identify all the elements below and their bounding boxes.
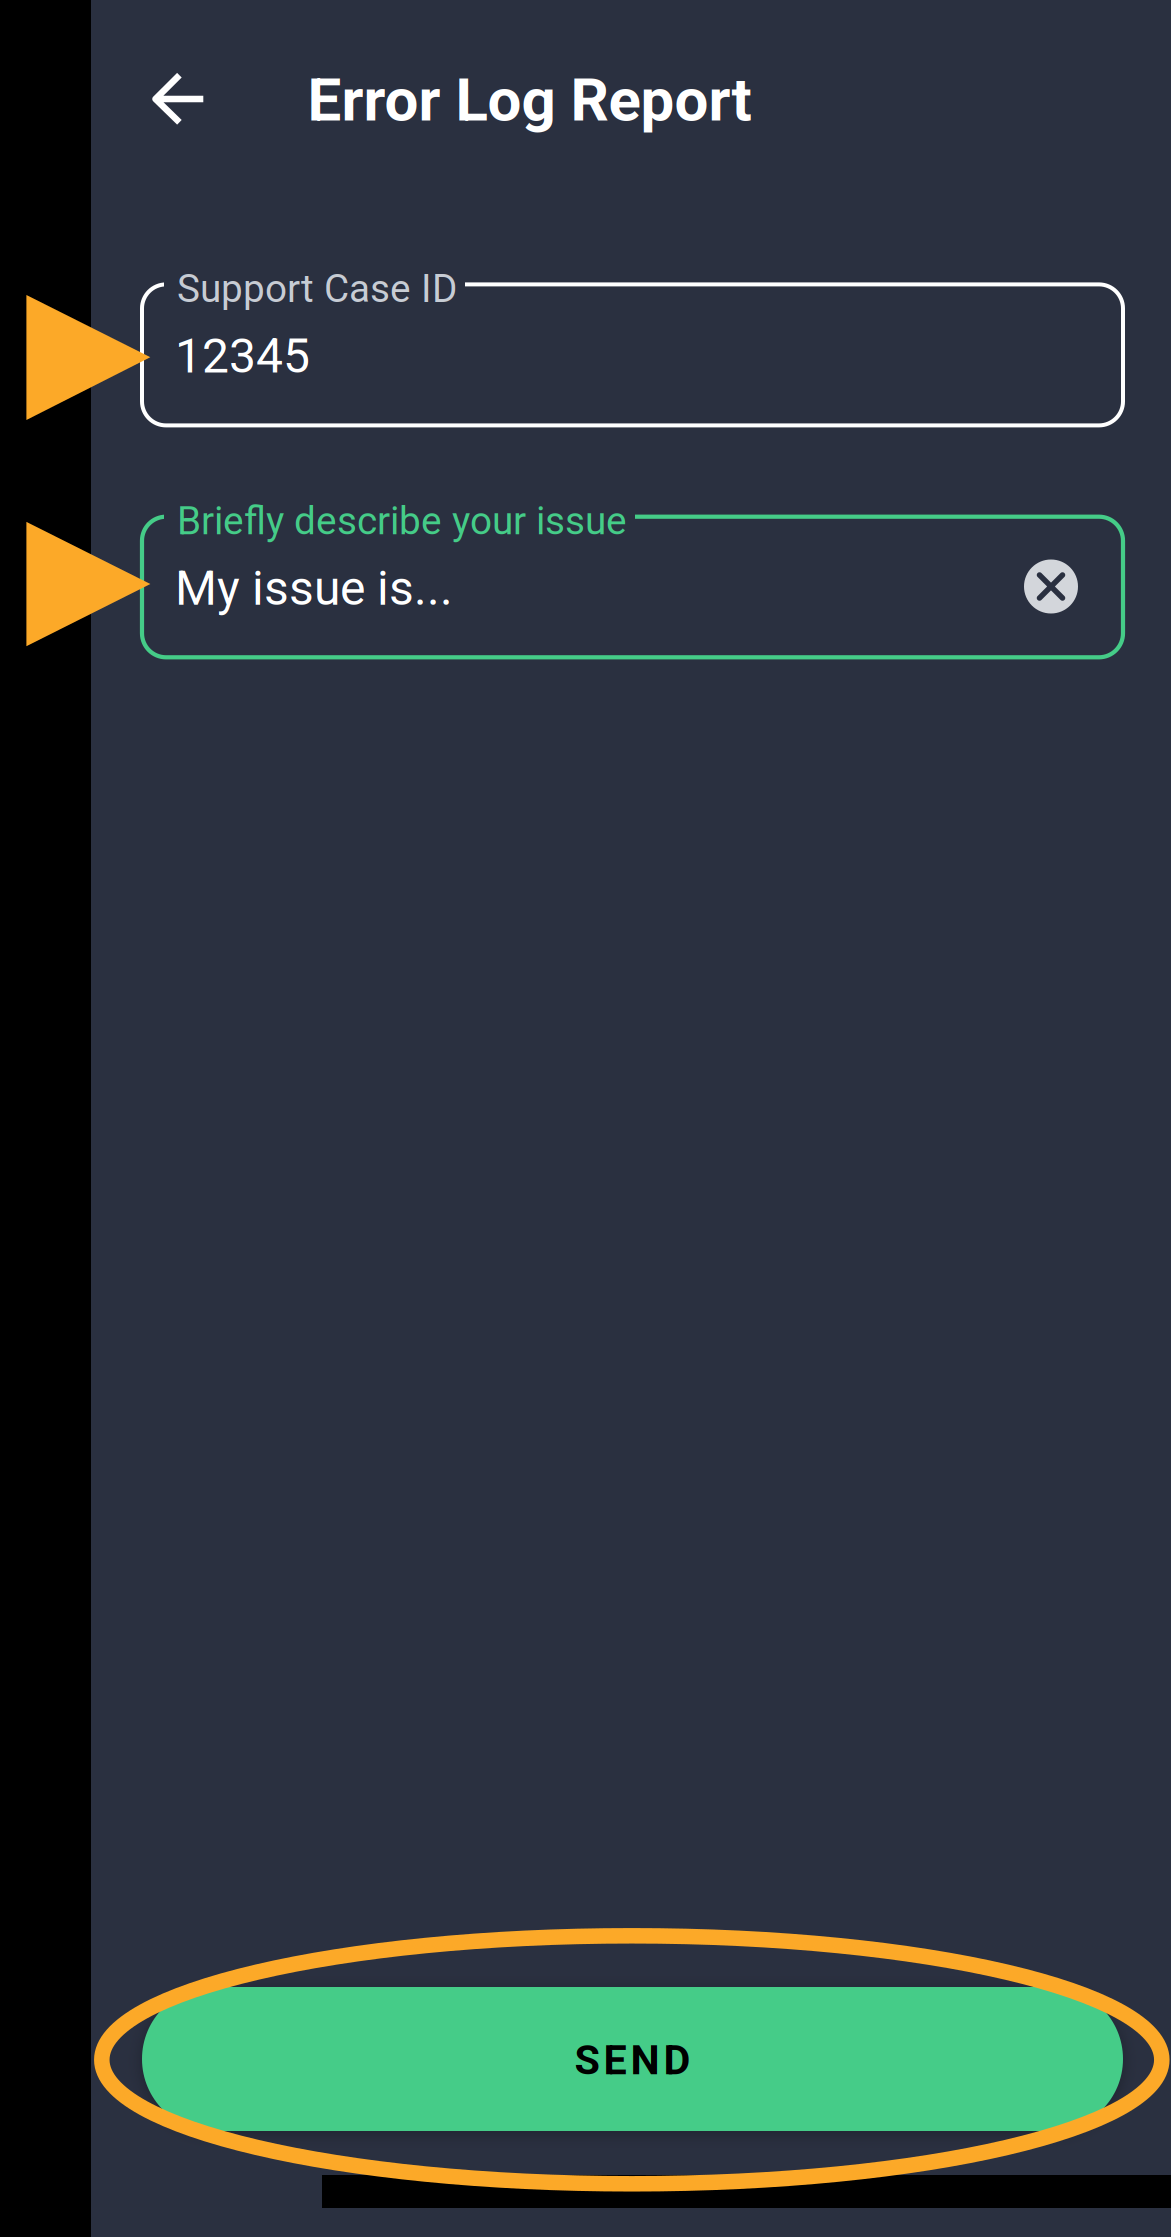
staticText: Briefly describe your issue xyxy=(177,498,627,544)
button[interactable]: My issue is... xyxy=(142,517,1123,657)
staticText: 12345 xyxy=(175,328,310,384)
button[interactable]: Clear text xyxy=(1024,559,1078,613)
button[interactable]: Back xyxy=(130,53,228,145)
staticText: My issue is... xyxy=(175,560,453,616)
button[interactable]: 12345 xyxy=(142,284,1123,425)
button[interactable]: S E N D xyxy=(142,1987,1123,2131)
staticText: Support Case ID xyxy=(177,266,457,311)
staticText: S E N D xyxy=(574,2036,690,2084)
staticText: Error Log Report xyxy=(307,65,751,135)
